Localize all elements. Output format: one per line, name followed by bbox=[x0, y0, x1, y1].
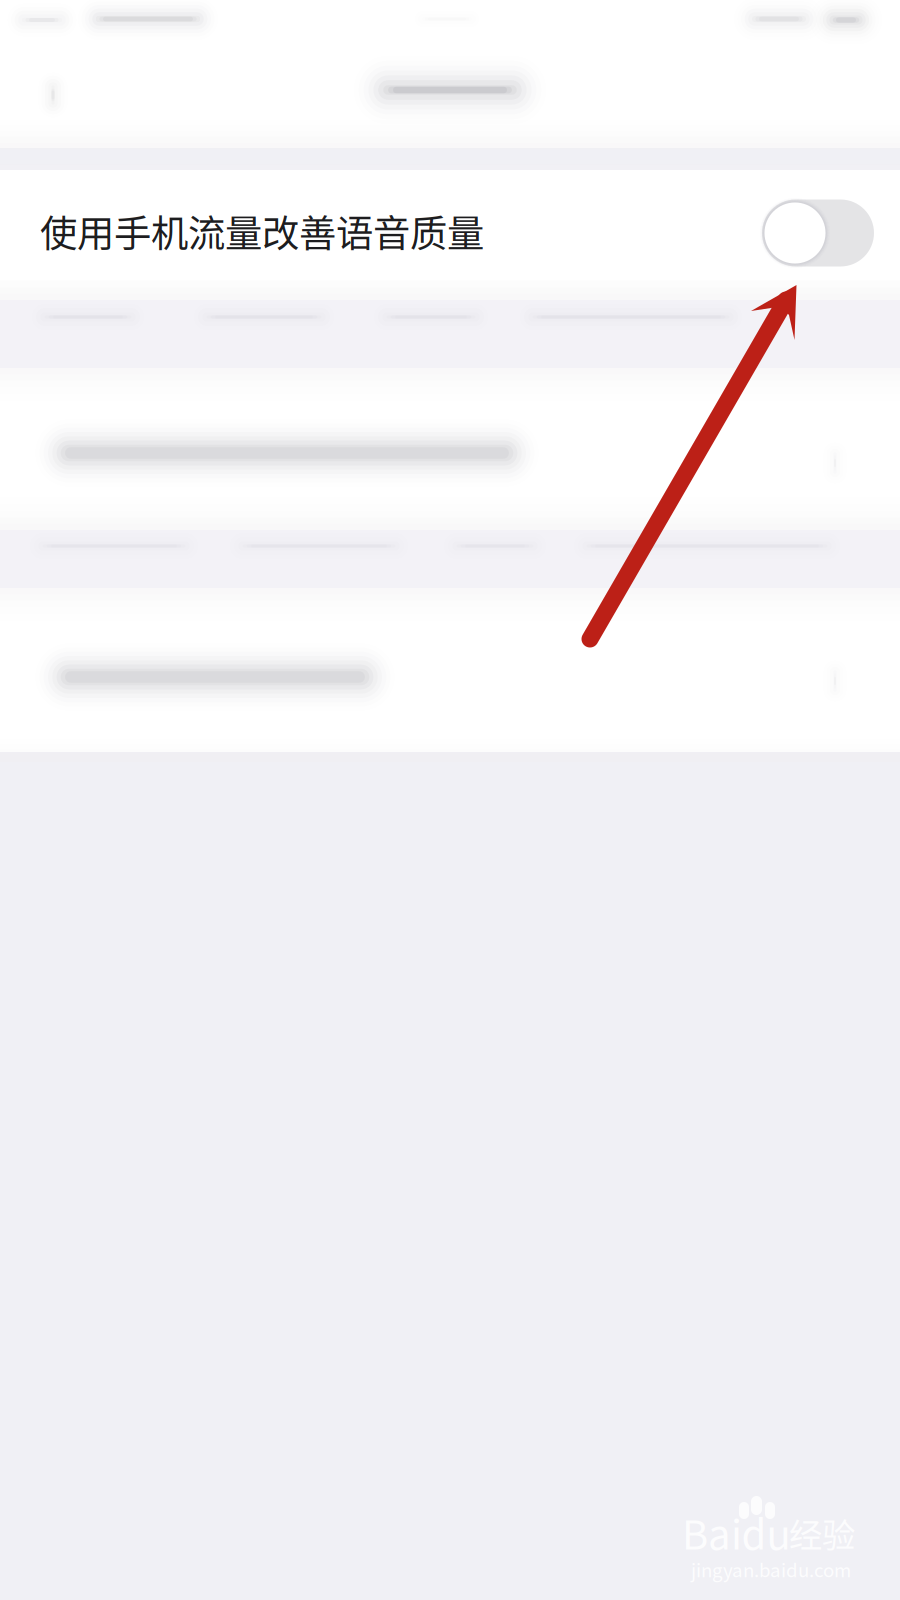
staticText: 经验 bbox=[789, 1509, 855, 1557]
staticText: du bbox=[741, 1503, 790, 1561]
staticText: Bai bbox=[682, 1503, 742, 1561]
staticText: jingyan.baidu.com bbox=[691, 1555, 851, 1582]
staticText: 使用手机流量改善语音质量 bbox=[40, 204, 484, 258]
button[interactable]: 使用手机流量改善语音质量 bbox=[0, 170, 900, 280]
